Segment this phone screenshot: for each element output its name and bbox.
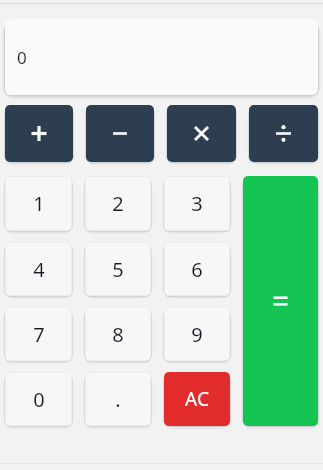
button[interactable]: Add bbox=[5, 105, 73, 162]
button[interactable]: 6 bbox=[164, 242, 230, 296]
button[interactable]: 3 bbox=[164, 176, 230, 231]
staticText: 0 bbox=[33, 386, 45, 413]
button[interactable]: Equals bbox=[243, 176, 318, 426]
button[interactable]: 8 bbox=[85, 307, 151, 361]
button[interactable]: AC bbox=[164, 372, 230, 426]
button[interactable]: Divide bbox=[249, 105, 318, 162]
button[interactable]: . bbox=[85, 372, 151, 426]
button[interactable]: 0 bbox=[5, 372, 72, 426]
staticText: 2 bbox=[112, 190, 124, 217]
staticText: AC bbox=[185, 386, 209, 412]
staticText: 4 bbox=[33, 256, 45, 283]
button[interactable]: 1 bbox=[5, 176, 72, 231]
button[interactable]: 4 bbox=[5, 242, 72, 296]
staticText: 1 bbox=[33, 190, 45, 217]
staticText: 5 bbox=[112, 256, 124, 283]
staticText: 9 bbox=[191, 321, 203, 348]
button[interactable]: Display bbox=[5, 19, 318, 95]
staticText: 6 bbox=[191, 256, 203, 283]
staticText: 0 bbox=[17, 46, 27, 69]
staticText: . bbox=[115, 386, 121, 413]
button[interactable]: 7 bbox=[5, 307, 72, 361]
staticText: 7 bbox=[33, 321, 45, 348]
staticText: 8 bbox=[112, 321, 124, 348]
staticText: 3 bbox=[191, 190, 203, 217]
button[interactable]: 5 bbox=[85, 242, 151, 296]
button[interactable]: Subtract bbox=[86, 105, 154, 162]
button[interactable]: 2 bbox=[85, 176, 151, 231]
button[interactable]: 9 bbox=[164, 307, 230, 361]
button[interactable]: Multiply bbox=[167, 105, 236, 162]
